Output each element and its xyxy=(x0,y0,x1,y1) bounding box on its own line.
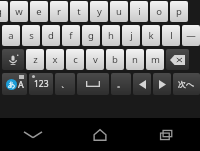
button[interactable]: p xyxy=(170,1,188,22)
button[interactable]: — xyxy=(182,25,200,46)
button[interactable]: Move cursor left xyxy=(133,73,151,95)
staticText: u xyxy=(116,5,122,18)
staticText: q xyxy=(0,5,2,18)
button[interactable]: j xyxy=(122,25,140,46)
button[interactable]: Numbers and symbols xyxy=(29,73,53,95)
button[interactable]: a xyxy=(2,25,20,46)
button[interactable]: Comma xyxy=(55,73,75,95)
staticText: d xyxy=(48,29,54,42)
staticText: 123 xyxy=(34,78,49,90)
button[interactable]: Voice input xyxy=(2,49,24,70)
staticText: e xyxy=(36,5,42,18)
staticText: あ xyxy=(8,80,16,89)
button[interactable]: d xyxy=(42,25,60,46)
button[interactable]: g xyxy=(82,25,100,46)
staticText: h xyxy=(108,29,114,42)
button[interactable]: Next xyxy=(173,73,200,95)
button[interactable]: m xyxy=(146,49,164,70)
button[interactable]: b xyxy=(106,49,124,70)
button[interactable]: w xyxy=(10,1,28,22)
staticText: j xyxy=(130,29,133,42)
button[interactable]: Backspace xyxy=(166,49,189,70)
button[interactable]: u xyxy=(110,1,128,22)
button[interactable]: z xyxy=(26,49,44,70)
staticText: 次へ xyxy=(178,79,195,89)
button[interactable]: Space xyxy=(77,73,109,95)
button[interactable]: Recent apps xyxy=(133,118,200,151)
button[interactable]: i xyxy=(130,1,148,22)
button[interactable]: x xyxy=(46,49,64,70)
staticText: n xyxy=(132,53,138,66)
staticText: v xyxy=(93,53,98,66)
staticText: k xyxy=(148,29,154,42)
staticText: 、 xyxy=(61,79,69,89)
button[interactable]: s xyxy=(22,25,40,46)
button[interactable]: k xyxy=(142,25,160,46)
staticText: A xyxy=(18,78,24,90)
button[interactable]: l xyxy=(162,25,180,46)
staticText: f xyxy=(69,29,73,42)
staticText: r xyxy=(57,5,61,18)
button[interactable]: f xyxy=(62,25,80,46)
button[interactable]: r xyxy=(50,1,68,22)
staticText: z xyxy=(33,53,38,66)
staticText: c xyxy=(73,53,78,66)
button[interactable]: q xyxy=(0,1,8,22)
staticText: o xyxy=(156,5,162,18)
staticText: t xyxy=(77,5,81,18)
button[interactable]: Hide keyboard xyxy=(0,118,66,151)
staticText: s xyxy=(29,29,34,42)
button[interactable]: v xyxy=(86,49,104,70)
staticText: — xyxy=(186,29,196,42)
button[interactable]: Move cursor right xyxy=(153,73,171,95)
button[interactable]: Period xyxy=(111,73,131,95)
staticText: l xyxy=(170,29,173,42)
button[interactable]: e xyxy=(30,1,48,22)
button[interactable]: t xyxy=(70,1,88,22)
staticText: i xyxy=(138,5,141,18)
staticText: b xyxy=(112,53,118,66)
button[interactable]: Home xyxy=(66,118,133,151)
staticText: p xyxy=(176,5,182,18)
staticText: a xyxy=(8,29,14,42)
staticText: w xyxy=(15,5,23,18)
button[interactable]: o xyxy=(150,1,168,22)
staticText: 。 xyxy=(117,79,125,89)
button[interactable]: n xyxy=(126,49,144,70)
button[interactable]: c xyxy=(66,49,84,70)
button[interactable]: y xyxy=(90,1,108,22)
button[interactable]: h xyxy=(102,25,120,46)
staticText: x xyxy=(52,53,58,66)
staticText: m xyxy=(151,53,160,66)
staticText: y xyxy=(97,5,102,18)
staticText: g xyxy=(88,29,94,42)
button[interactable]: Switch language xyxy=(2,73,27,95)
